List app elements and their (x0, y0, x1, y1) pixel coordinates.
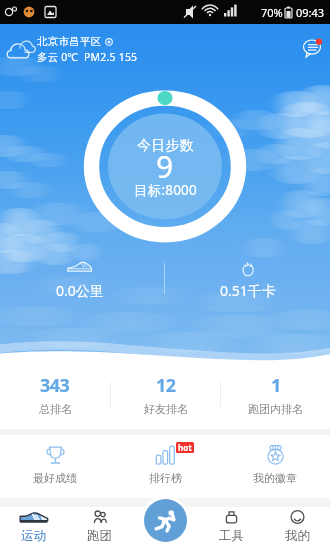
staticText: 跑团内排名 (248, 402, 303, 416)
staticText: 70% (261, 5, 283, 20)
staticText: 目标:8000 (134, 181, 197, 199)
button[interactable]: hot (110, 435, 220, 495)
button[interactable]: 最好成绩 (0, 435, 110, 495)
button[interactable]: 12 (111, 366, 220, 423)
staticText: 我的徽章 (253, 471, 297, 485)
button[interactable]: 运动 (0, 505, 66, 548)
staticText: 北京市昌平区 (37, 35, 102, 48)
staticText: 9 (156, 146, 174, 187)
staticText: 今日步数 (137, 137, 194, 155)
staticText: 12 (156, 373, 176, 398)
staticText: 排行榜 (149, 471, 182, 485)
staticText: 多云 0℃ PM2.5 155 (37, 50, 138, 64)
staticText: 工具 (219, 528, 244, 544)
staticText: 0.51千卡 (220, 281, 276, 300)
button[interactable]: 我的 (264, 505, 330, 548)
staticText: 09:43 (296, 5, 325, 20)
staticText: 0.0公里 (56, 281, 104, 300)
button[interactable]: 343 (0, 366, 110, 423)
button[interactable]: 我的徽章 (220, 435, 330, 495)
staticText: 好友排名 (144, 402, 188, 416)
staticText: 运动 (21, 528, 46, 544)
button[interactable]: 0.51千卡 (165, 262, 330, 300)
staticText: 343 (40, 373, 70, 398)
staticText: hot (178, 442, 192, 453)
staticText: 总排名 (39, 402, 72, 416)
button[interactable]: 0.0公里 (0, 261, 162, 300)
button[interactable]: 跑团 (66, 505, 132, 548)
staticText: 1 (271, 373, 281, 398)
staticText: 我的 (285, 528, 310, 544)
button[interactable]: 工具 (198, 505, 264, 548)
button[interactable]: 1 (221, 366, 330, 423)
button[interactable]: Start running (144, 499, 187, 542)
staticText: 跑团 (87, 528, 112, 544)
staticText: 最好成绩 (33, 471, 77, 485)
button[interactable]: Messages (303, 39, 322, 58)
